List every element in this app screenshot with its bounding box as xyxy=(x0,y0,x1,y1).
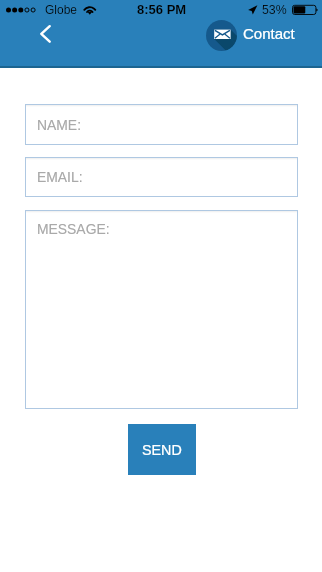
button[interactable]: EMAIL: xyxy=(25,157,298,197)
button[interactable]: Contact xyxy=(206,20,237,51)
staticText: MESSAGE: xyxy=(37,221,110,237)
staticText: NAME: xyxy=(37,117,81,133)
button[interactable]: Contact xyxy=(243,25,295,42)
button[interactable]: SEND xyxy=(128,424,196,475)
staticText: Globe xyxy=(45,3,78,16)
staticText: 8:56 PM xyxy=(137,2,187,17)
button[interactable]: MESSAGE: xyxy=(25,210,298,409)
button[interactable]: NAME: xyxy=(25,104,298,145)
staticText: 53% xyxy=(262,3,287,17)
staticText: SEND xyxy=(142,442,182,458)
staticText: EMAIL: xyxy=(37,169,83,185)
button[interactable]: Back xyxy=(38,24,56,44)
